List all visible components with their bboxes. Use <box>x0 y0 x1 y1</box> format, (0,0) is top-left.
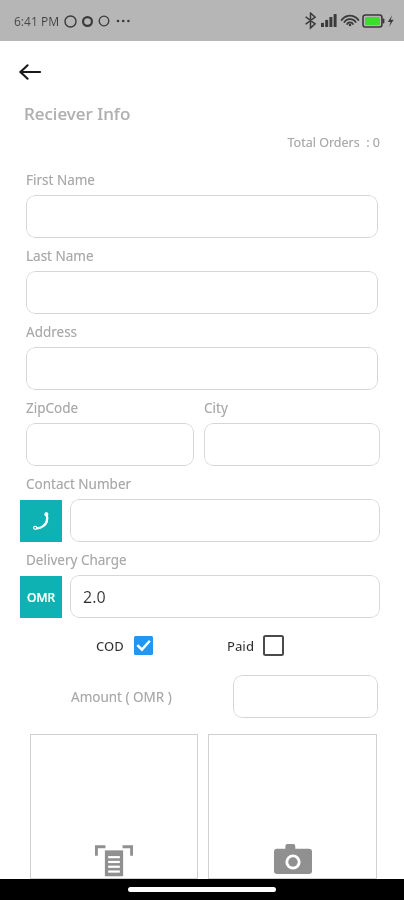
staticText: 6:41 PM <box>14 13 60 29</box>
staticText: COD <box>96 637 124 655</box>
button[interactable]: Take photo <box>208 734 377 879</box>
staticText: ZipCode <box>26 399 79 417</box>
staticText: Last Name <box>26 247 94 265</box>
button[interactable]: COD <box>96 636 153 655</box>
staticText: 2.0 <box>83 586 106 608</box>
button[interactable]: Text field <box>26 271 378 314</box>
button[interactable]: Paid <box>227 636 283 655</box>
button[interactable]: Text field <box>70 499 380 542</box>
button[interactable]: Call <box>20 500 62 542</box>
button[interactable]: Back <box>8 50 52 94</box>
staticText: OMR <box>27 589 56 605</box>
button[interactable]: Text field <box>26 347 378 390</box>
staticText: Reciever Info <box>24 102 131 125</box>
staticText: City <box>204 399 228 417</box>
button[interactable]: Text field <box>26 423 194 466</box>
staticText: Contact Number <box>26 475 132 493</box>
button[interactable]: 2.0 <box>70 575 380 618</box>
button[interactable]: Text field <box>233 675 378 718</box>
staticText: Address <box>26 323 78 341</box>
staticText: Delivery Charge <box>26 551 127 569</box>
button[interactable]: OMR <box>20 576 62 618</box>
staticText: First Name <box>26 171 95 189</box>
button[interactable]: Text field <box>204 423 380 466</box>
button[interactable]: Scan document <box>30 734 198 879</box>
button[interactable]: Text field <box>26 195 378 238</box>
staticText: Paid <box>227 637 254 655</box>
staticText: Total Orders : 0 <box>0 134 380 151</box>
staticText: Amount ( OMR ) <box>71 688 172 706</box>
